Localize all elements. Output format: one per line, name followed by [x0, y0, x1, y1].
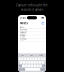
button[interactable]: Groceries — [18, 29, 46, 32]
button[interactable] — [21, 57, 24, 60]
staticText: Trip ideas — [20, 32, 27, 34]
staticText: Notes — [20, 21, 28, 25]
staticText: second it arrives — [21, 8, 43, 12]
button[interactable] — [27, 57, 29, 60]
button[interactable] — [31, 61, 33, 64]
button[interactable] — [36, 61, 39, 64]
button[interactable] — [25, 64, 27, 67]
button[interactable]: Reading — [18, 35, 46, 38]
staticText: Groceries — [20, 29, 28, 30]
button[interactable]: Trip ideas — [18, 32, 46, 35]
button[interactable] — [39, 61, 41, 64]
staticText: Standup — [20, 38, 27, 40]
staticText: Monday — [20, 34, 26, 35]
button[interactable] — [19, 57, 21, 60]
staticText: Reading — [20, 35, 26, 37]
button[interactable] — [38, 57, 40, 60]
button[interactable]: Emoji — [22, 68, 25, 71]
button[interactable] — [39, 64, 42, 67]
button[interactable] — [31, 64, 33, 67]
button[interactable] — [40, 57, 43, 60]
staticText: All iCloud — [20, 26, 25, 28]
button[interactable] — [24, 57, 26, 60]
staticText: notes — [29, 54, 33, 56]
staticText: 9:41 — [20, 16, 27, 19]
button[interactable] — [34, 64, 36, 67]
button[interactable] — [34, 61, 36, 64]
staticText: note — [21, 54, 24, 56]
button[interactable] — [35, 57, 37, 60]
button[interactable] — [36, 64, 39, 67]
button[interactable] — [22, 64, 25, 67]
button[interactable] — [28, 64, 30, 67]
button[interactable] — [32, 57, 34, 60]
staticText: Yesterday — [20, 30, 28, 32]
button[interactable] — [29, 57, 32, 60]
button[interactable] — [43, 57, 45, 60]
button[interactable] — [25, 61, 28, 64]
button[interactable] — [20, 61, 22, 64]
button[interactable] — [23, 61, 25, 64]
button[interactable]: New note — [42, 22, 44, 25]
staticText: 12 Aug — [20, 37, 25, 38]
button[interactable]: Standup — [18, 38, 46, 41]
button[interactable] — [42, 61, 44, 64]
button[interactable]: Space — [25, 68, 40, 71]
staticText: Capture a thought the — [16, 3, 48, 7]
button[interactable]: Numbers — [19, 68, 22, 71]
button[interactable]: Return — [40, 68, 45, 71]
button[interactable]: Shift — [19, 64, 22, 67]
staticText: 9 Aug — [20, 40, 24, 42]
button[interactable] — [28, 61, 30, 64]
button[interactable]: Delete — [42, 64, 45, 67]
staticText: noted — [39, 54, 43, 56]
